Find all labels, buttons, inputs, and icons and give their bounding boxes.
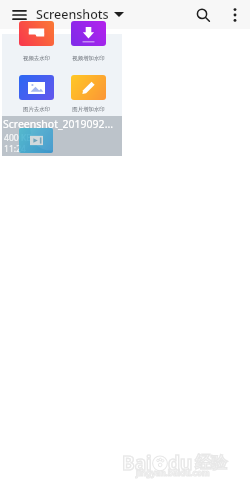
- staticText: 11:24: [4, 143, 26, 155]
- staticText: 图片去水印: [23, 106, 50, 113]
- staticText: Screenshots: [36, 6, 109, 23]
- staticText: 400 KB: [4, 132, 32, 144]
- staticText: du: [168, 450, 193, 476]
- staticText: 视频增加水印: [72, 55, 105, 62]
- button[interactable]: Search: [190, 2, 216, 27]
- button[interactable]: Open navigation menu: [6, 3, 33, 26]
- staticText: Bai: [122, 450, 152, 476]
- staticText: Screenshot_2019092...: [3, 117, 114, 131]
- button[interactable]: More options: [222, 2, 247, 27]
- staticText: 图片增加水印: [72, 106, 105, 113]
- staticText: 经验: [195, 453, 227, 473]
- staticText: jingyan.baidu.com: [136, 467, 210, 478]
- staticText: 视频去水印: [23, 55, 50, 62]
- button[interactable]: Screenshots: [36, 0, 124, 29]
- button[interactable]: 视频去水印: [2, 34, 122, 156]
